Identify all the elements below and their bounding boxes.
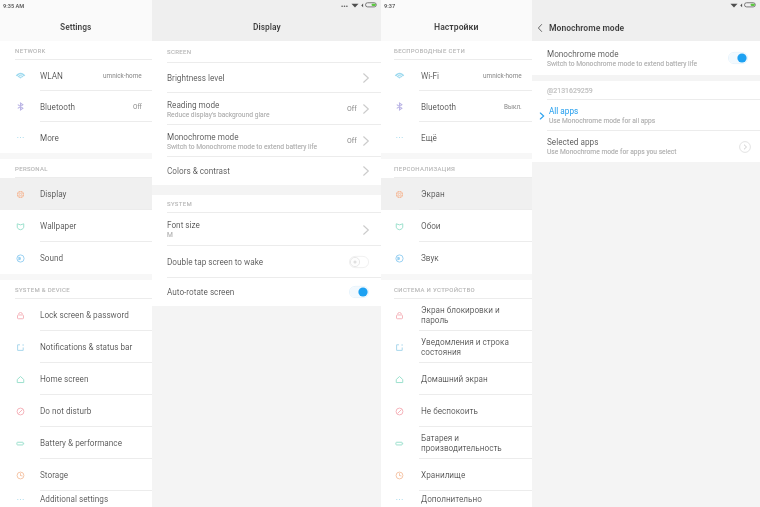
staticText: Do not disturb [40,406,92,416]
staticText: Display [40,189,67,199]
button[interactable]: Brightness level [152,63,381,93]
button[interactable]: Экран блокировки и пароль [381,299,532,331]
staticText: Настройки [434,22,479,32]
button[interactable]: Не беспокоить [381,395,532,427]
button[interactable]: Sound [0,242,152,274]
staticText: Хранилище [421,470,466,480]
button[interactable]: Double tap screen to wake [152,246,381,278]
button[interactable]: Monochrome mode [532,41,760,75]
button[interactable]: More [0,122,152,153]
staticText: Notifications & status bar [40,342,133,352]
staticText: Wi-Fi [421,71,440,81]
button[interactable]: Экран [381,178,532,210]
staticText: Use Monochrome mode for apps you select [547,148,677,156]
staticText: Обои [421,221,441,231]
button[interactable]: Bluetooth [381,91,532,122]
staticText: Monochrome mode [549,23,625,33]
staticText: Off [133,103,142,111]
button[interactable]: Звук [381,242,532,274]
staticText: Auto-rotate screen [167,287,235,297]
staticText: PERSONAL [15,165,48,172]
button[interactable]: WLAN [0,60,152,91]
button[interactable]: Switch on [349,286,369,298]
staticText: Bluetooth [40,102,76,112]
button[interactable]: Auto-rotate screen [152,278,381,306]
button[interactable]: Monochrome mode [152,125,381,157]
button[interactable]: Navigate up [534,22,546,34]
staticText: Double tap screen to wake [167,257,264,267]
staticText: 9:37 [384,3,396,10]
staticText: Reduce display's background glare [167,111,270,119]
button[interactable]: Reading mode [152,93,381,125]
button[interactable]: Домашний экран [381,363,532,395]
button[interactable]: Storage [0,459,152,491]
button[interactable]: Switch off [349,256,369,268]
button[interactable]: Уведомления и строка состояния [381,331,532,363]
staticText: Экран [421,189,445,199]
staticText: More [40,133,59,143]
button[interactable]: Wi-Fi [381,60,532,91]
button[interactable]: Switch on [728,52,748,64]
staticText: Домашний экран [421,374,488,384]
staticText: ПЕРСОНАЛИЗАЦИЯ [394,165,456,172]
staticText: @2131629259 [547,87,593,95]
button[interactable]: Display [0,178,152,210]
staticText: Lock screen & password [40,310,129,320]
staticText: Выкл. [504,103,522,111]
staticText: Switch to Monochrome mode to extend batt… [547,60,698,68]
staticText: umnick-home [483,72,522,80]
staticText: Home screen [40,374,89,384]
staticText: Off [347,137,357,145]
button[interactable]: Ещё [381,122,532,153]
staticText: NETWORK [15,47,46,54]
staticText: Storage [40,470,69,480]
staticText: Экран блокировки и пароль [421,305,522,325]
button[interactable]: Selected apps [532,131,760,162]
button[interactable]: Bluetooth [0,91,152,122]
button[interactable]: Home screen [0,363,152,395]
button[interactable]: Lock screen & password [0,299,152,331]
staticText: Monochrome mode [547,49,619,59]
staticText: Дополнительно [421,494,482,504]
button[interactable]: Choose selected apps [738,140,751,153]
staticText: Selected apps [547,137,599,147]
staticText: Батарея и производительность [421,433,522,453]
staticText: Switch to Monochrome mode to extend batt… [167,143,318,151]
staticText: SCREEN [167,48,192,55]
staticText: WLAN [40,71,63,81]
button[interactable]: Additional settings [0,491,152,507]
staticText: Bluetooth [421,102,457,112]
staticText: Reading mode [167,100,220,110]
staticText: Sound [40,253,64,263]
staticText: Settings [60,22,92,32]
staticText: Font size [167,220,200,230]
staticText: Off [347,105,357,113]
button[interactable]: Battery & performance [0,427,152,459]
button[interactable]: Notifications & status bar [0,331,152,363]
staticText: All apps [549,106,579,116]
button[interactable]: Обои [381,210,532,242]
button[interactable]: Wallpaper [0,210,152,242]
staticText: Use Monochrome mode for all apps [549,117,656,125]
staticText: 9:35 AM [3,3,25,10]
button[interactable]: Хранилище [381,459,532,491]
button[interactable]: Батарея и производительность [381,427,532,459]
staticText: Уведомления и строка состояния [421,337,522,357]
button[interactable]: Дополнительно [381,491,532,507]
staticText: Battery & performance [40,438,122,448]
staticText: Звук [421,253,439,263]
staticText: umnick-home [103,72,142,80]
button[interactable]: Do not disturb [0,395,152,427]
staticText: Monochrome mode [167,132,239,142]
button[interactable]: Colors & contrast [152,157,381,185]
staticText: SYSTEM [167,200,193,207]
button[interactable]: All apps [532,100,760,131]
staticText: Ещё [421,133,437,143]
staticText: SYSTEM & DEVICE [15,286,70,293]
staticText: Additional settings [40,494,109,504]
button[interactable]: Font size [152,213,381,246]
staticText: Display [253,22,281,32]
staticText: Не беспокоить [421,406,478,416]
staticText: СИСТЕМА И УСТРОЙСТВО [394,286,476,293]
staticText: Wallpaper [40,221,77,231]
